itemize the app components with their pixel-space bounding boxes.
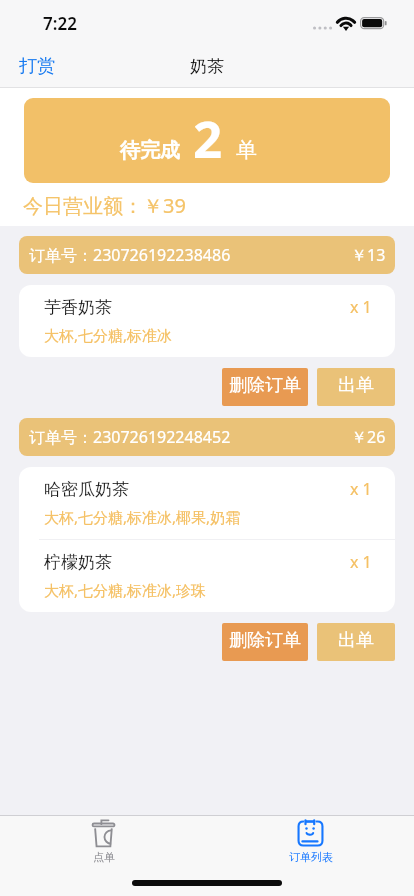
button[interactable]: 柠檬奶茶 <box>19 540 395 612</box>
staticText: 单 <box>236 137 257 163</box>
staticText: 芋香奶茶 <box>44 297 112 318</box>
staticText: 点单 <box>93 850 115 864</box>
button[interactable]: 订单列表 <box>207 816 414 866</box>
staticText: ￥13 <box>351 244 386 266</box>
staticText: 出单 <box>338 374 374 397</box>
other: 点单 <box>91 819 116 847</box>
staticText: 大杯,七分糖,标准冰,珍珠 <box>44 580 207 600</box>
staticText: 删除订单 <box>229 374 301 397</box>
staticText: 7:22 <box>43 12 77 35</box>
staticText: ￥26 <box>351 426 386 448</box>
button[interactable]: 删除订单 <box>222 623 308 661</box>
staticText: 待完成 <box>120 138 180 163</box>
staticText: 出单 <box>338 629 374 652</box>
staticText: 大杯,七分糖,标准冰 <box>44 325 173 345</box>
staticText: 柠檬奶茶 <box>44 552 112 573</box>
button[interactable]: 出单 <box>317 368 395 406</box>
staticText: 2 <box>193 103 223 172</box>
button[interactable]: 删除订单 <box>222 368 308 406</box>
staticText: x 1 <box>350 478 372 500</box>
button[interactable]: 待完成 <box>24 98 390 183</box>
button[interactable]: 订单号：230726192248452 <box>19 418 395 456</box>
button[interactable]: 出单 <box>317 623 395 661</box>
staticText: 订单号：230726192248452 <box>29 426 231 448</box>
other: 订单列表 <box>298 819 323 847</box>
staticText: 哈密瓜奶茶 <box>44 479 129 500</box>
staticText: 今日营业额：￥39 <box>23 192 186 219</box>
staticText: x 1 <box>350 296 372 318</box>
staticText: 奶茶 <box>190 56 224 77</box>
button[interactable]: 哈密瓜奶茶 <box>19 467 395 539</box>
staticText: 大杯,七分糖,标准冰,椰果,奶霜 <box>44 507 241 527</box>
staticText: 打赏 <box>19 55 55 78</box>
button[interactable]: 点单 <box>0 816 207 866</box>
button[interactable]: 订单号：230726192238486 <box>19 236 395 274</box>
staticText: 删除订单 <box>229 629 301 652</box>
button[interactable]: 打赏 <box>0 47 69 86</box>
staticText: 订单列表 <box>289 850 333 864</box>
staticText: x 1 <box>350 551 372 573</box>
button[interactable]: 芋香奶茶 <box>19 285 395 357</box>
staticText: 订单号：230726192238486 <box>29 244 231 266</box>
